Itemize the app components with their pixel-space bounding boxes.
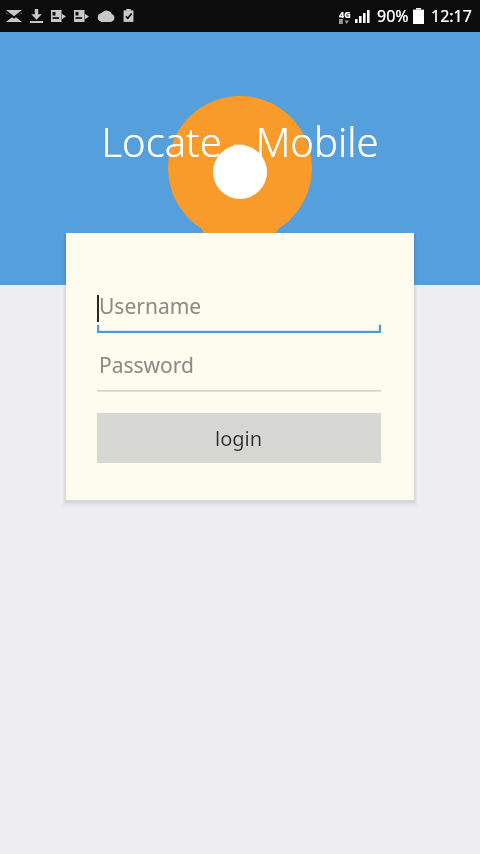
staticText: Password [99, 351, 194, 380]
staticText: 12:17 [431, 5, 472, 27]
staticText: Username [99, 292, 202, 321]
button[interactable]: login [97, 413, 381, 463]
button[interactable]: Password [97, 350, 381, 392]
button[interactable]: Username [97, 291, 381, 333]
staticText: 4G [339, 8, 351, 20]
staticText: 90% [377, 5, 409, 27]
staticText: login [215, 425, 263, 452]
staticText: Locate - Mobile [0, 114, 480, 168]
